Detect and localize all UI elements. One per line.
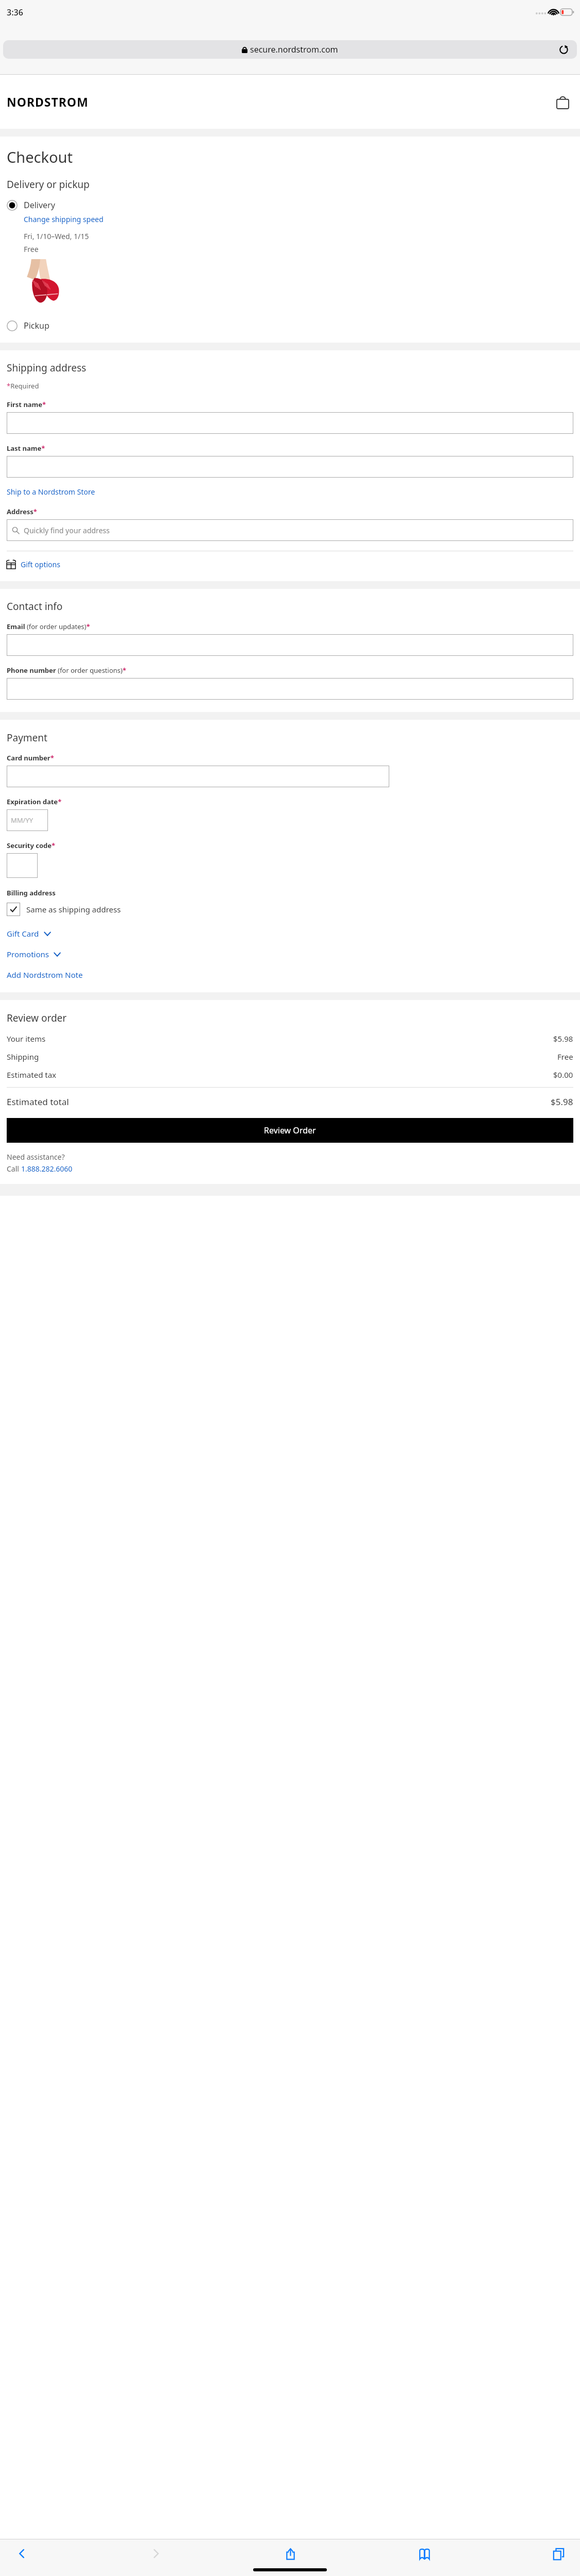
button[interactable]: Share bbox=[280, 2544, 301, 2564]
button[interactable]: Quickly find your address bbox=[7, 519, 573, 541]
button[interactable]: Forward bbox=[145, 2544, 166, 2564]
staticText: Same as shipping address bbox=[26, 904, 121, 914]
button[interactable]: Reload bbox=[557, 43, 570, 56]
staticText: Shipping bbox=[7, 1052, 39, 1062]
button[interactable]: Pickup bbox=[7, 320, 573, 331]
staticText: Review order bbox=[7, 1011, 67, 1025]
staticText: Gift options bbox=[21, 560, 60, 569]
staticText: Shipping address bbox=[7, 361, 87, 375]
staticText: Your items bbox=[7, 1033, 46, 1044]
staticText: Address* bbox=[7, 507, 37, 516]
button[interactable]: Ship to a Nordstrom Store bbox=[7, 487, 95, 497]
button[interactable] bbox=[7, 456, 573, 478]
button[interactable] bbox=[7, 678, 573, 700]
staticText: Free bbox=[24, 244, 39, 254]
staticText: Email (for order updates)* bbox=[7, 622, 90, 631]
staticText: secure.nordstrom.com bbox=[250, 44, 338, 55]
button[interactable]: MM/YY bbox=[7, 809, 48, 831]
staticText: Need assistance? bbox=[7, 1152, 65, 1162]
staticText: First name* bbox=[7, 400, 46, 409]
staticText: MM/YY bbox=[11, 816, 34, 825]
button[interactable]: Tabs bbox=[548, 2544, 569, 2564]
staticText: Fri, 1/10–Wed, 1/15 bbox=[24, 231, 89, 241]
staticText: Checkout bbox=[7, 147, 73, 167]
staticText: Promotions bbox=[7, 949, 49, 959]
button[interactable] bbox=[7, 412, 573, 434]
staticText: Billing address bbox=[7, 888, 56, 897]
staticText: Estimated total bbox=[7, 1096, 69, 1108]
button[interactable]: Call bbox=[7, 1164, 73, 1174]
button[interactable]: secure.nordstrom.com bbox=[3, 40, 577, 59]
staticText: Call bbox=[7, 1164, 21, 1174]
button[interactable] bbox=[7, 634, 573, 656]
staticText: Free bbox=[557, 1052, 573, 1062]
staticText: Expiration date* bbox=[7, 797, 62, 806]
button[interactable]: Shopping bag bbox=[552, 92, 573, 112]
button[interactable]: Same as shipping address bbox=[7, 903, 121, 916]
staticText: Estimated tax bbox=[7, 1070, 57, 1080]
staticText: Review Order bbox=[264, 1125, 316, 1136]
staticText: $5.98 bbox=[551, 1096, 573, 1108]
staticText: Pickup bbox=[24, 320, 49, 331]
button[interactable]: Review Order bbox=[7, 1118, 573, 1143]
button[interactable]: Promotions bbox=[7, 949, 61, 959]
staticText: 1.888.282.6060 bbox=[21, 1164, 73, 1174]
staticText: Delivery bbox=[24, 199, 55, 211]
button[interactable] bbox=[7, 766, 389, 787]
button[interactable]: Delivery bbox=[7, 199, 573, 211]
button[interactable]: Gift options bbox=[7, 560, 60, 569]
staticText: Quickly find your address bbox=[24, 526, 110, 535]
staticText: NORDSTROM bbox=[7, 94, 89, 110]
staticText: Phone number (for order questions)* bbox=[7, 666, 126, 675]
staticText: Payment bbox=[7, 731, 47, 744]
staticText: Gift Card bbox=[7, 928, 39, 939]
staticText: Contact info bbox=[7, 600, 63, 613]
staticText: Last name* bbox=[7, 444, 45, 453]
staticText: Delivery or pickup bbox=[7, 178, 90, 191]
staticText: Security code* bbox=[7, 841, 56, 850]
button[interactable]: Add Nordstrom Note bbox=[7, 970, 83, 980]
button[interactable]: Bookmarks bbox=[414, 2544, 435, 2564]
staticText: Card number* bbox=[7, 753, 54, 762]
button[interactable] bbox=[7, 853, 38, 878]
button[interactable]: Change shipping speed bbox=[24, 214, 104, 224]
staticText: $0.00 bbox=[553, 1070, 573, 1080]
staticText: *Required bbox=[7, 381, 39, 391]
staticText: 3:36 bbox=[7, 7, 23, 18]
button[interactable]: Back bbox=[11, 2544, 32, 2564]
staticText: $5.98 bbox=[553, 1033, 573, 1044]
button[interactable]: Gift Card bbox=[7, 928, 51, 939]
